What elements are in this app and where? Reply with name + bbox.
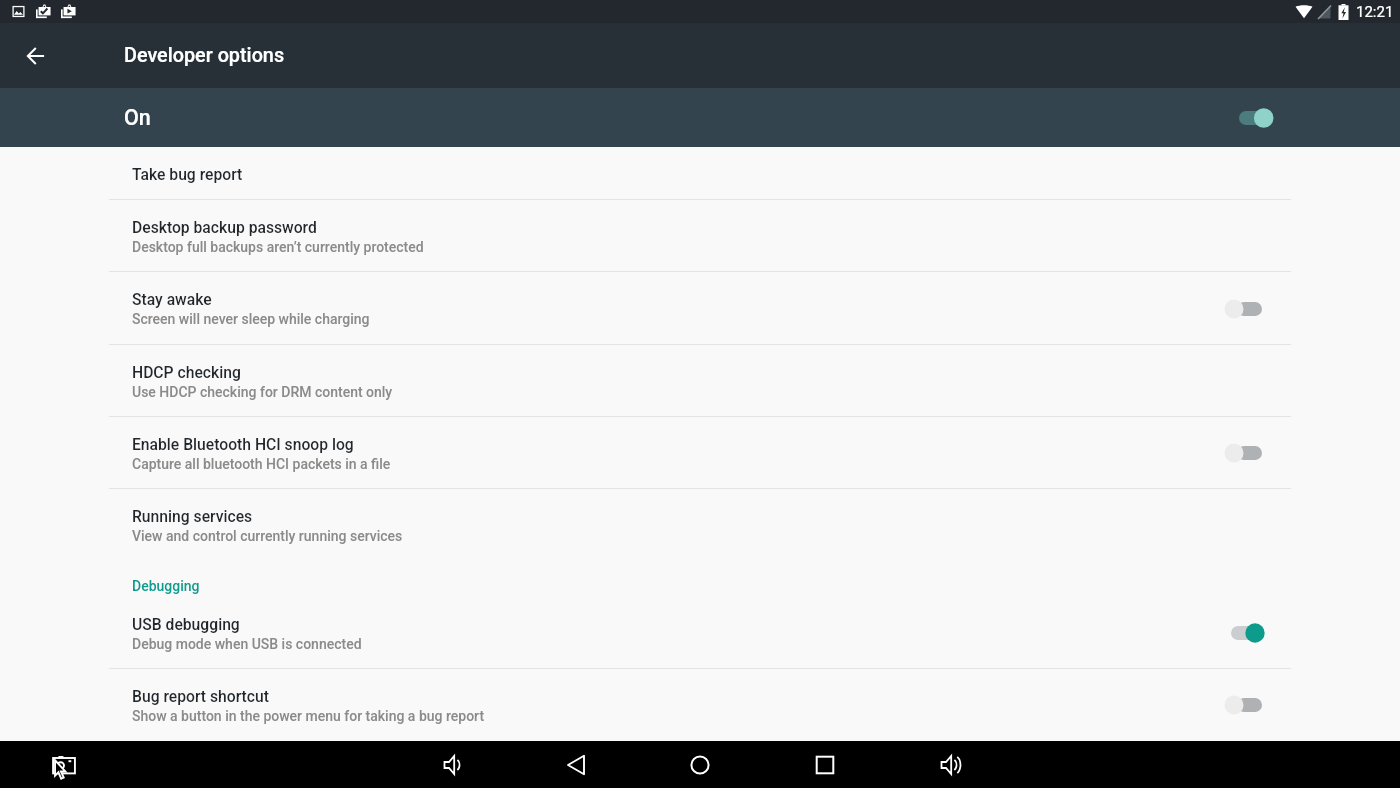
button[interactable]: Desktop backup password <box>0 200 1400 272</box>
staticText: HDCP checking <box>132 363 241 381</box>
button[interactable]: Stay awake <box>0 272 1400 345</box>
staticText: Stay awake <box>132 290 212 308</box>
button[interactable]: On <box>0 88 1400 147</box>
staticText: Capture all bluetooth HCI packets in a f… <box>132 456 391 472</box>
staticText: Use HDCP checking for DRM content only <box>132 384 393 400</box>
staticText: Developer options <box>124 44 285 67</box>
staticText: Screen will never sleep while charging <box>132 311 370 327</box>
staticText: Desktop backup password <box>132 218 317 236</box>
button[interactable]: HDCP checking <box>0 345 1400 417</box>
staticText: USB debugging <box>132 615 240 633</box>
button[interactable]: Back <box>554 743 598 787</box>
button[interactable]: Recents <box>803 743 847 787</box>
button[interactable]: Running services <box>0 489 1400 561</box>
staticText: Running services <box>132 507 253 525</box>
staticText: Debugging <box>132 578 200 594</box>
button[interactable]: Back <box>16 36 56 76</box>
staticText: Take bug report <box>132 165 243 183</box>
button[interactable]: USB debugging <box>0 597 1400 669</box>
button[interactable]: Enable Bluetooth HCI snoop log <box>0 417 1400 489</box>
staticText: Debug mode when USB is connected <box>132 636 362 652</box>
staticText: View and control currently running servi… <box>132 528 403 544</box>
button[interactable]: Take bug report <box>0 147 1400 200</box>
staticText: Bug report shortcut <box>132 687 269 705</box>
staticText: Enable Bluetooth HCI snoop log <box>132 435 354 453</box>
staticText: 12:21 <box>1356 3 1394 21</box>
staticText: Show a button in the power menu for taki… <box>132 708 485 724</box>
staticText: Desktop full backups aren’t currently pr… <box>132 239 424 255</box>
staticText: On <box>124 105 151 130</box>
button[interactable]: Volume up <box>927 743 971 787</box>
button[interactable]: Screenshot <box>42 743 86 787</box>
button[interactable]: Bug report shortcut <box>0 669 1400 741</box>
button[interactable]: Home <box>678 743 722 787</box>
button[interactable]: Volume down <box>430 743 474 787</box>
